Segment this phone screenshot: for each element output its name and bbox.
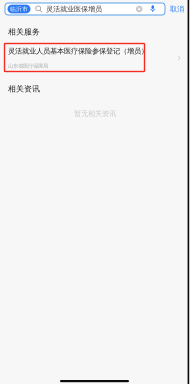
button[interactable]: 灵活就业人员基本医疗保险参保登记（增员） [0, 44, 190, 72]
button[interactable]: 取消 [165, 3, 189, 15]
button[interactable]: 临沂市 [7, 5, 30, 13]
staticText: 取消 [170, 4, 184, 14]
staticText: 山东省医疗保障局 [8, 63, 48, 69]
staticText: 灵活就业医保增员 [46, 4, 102, 14]
staticText: 相关服务 [8, 27, 40, 37]
staticText: 相关资讯 [8, 84, 40, 94]
button[interactable]: Clear search text [136, 6, 142, 12]
staticText: 暂无相关资讯 [74, 109, 116, 118]
staticText: 灵活就业人员基本医疗保险参保登记（增员） [8, 47, 148, 56]
button[interactable]: Voice search [142, 5, 162, 13]
staticText: 临沂市 [10, 5, 28, 13]
